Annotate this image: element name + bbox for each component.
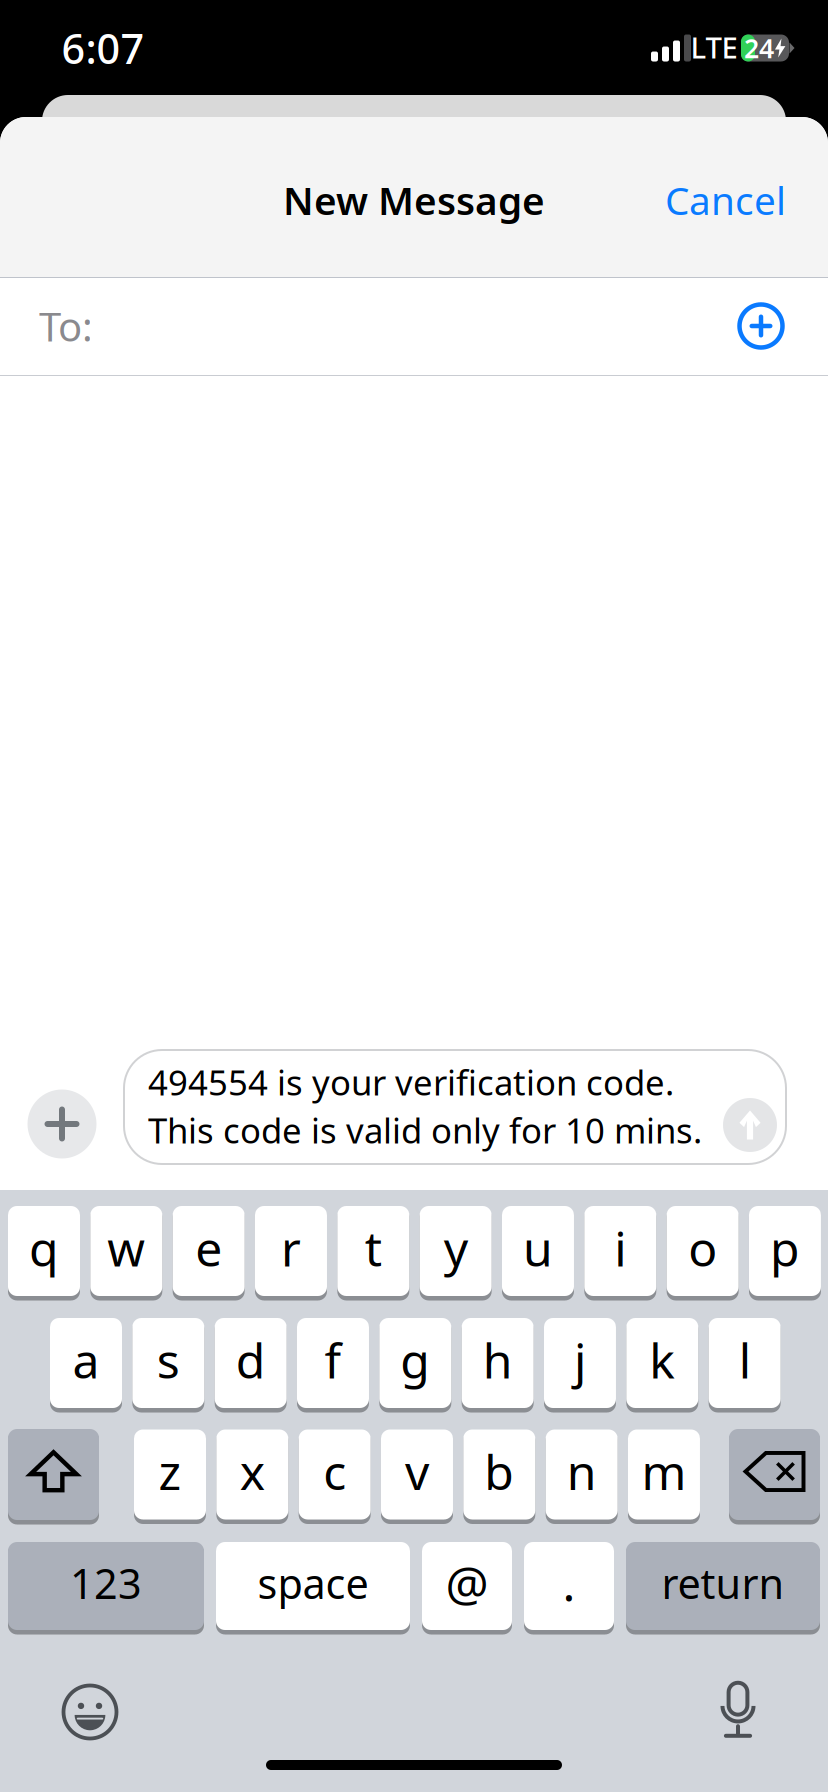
staticText: 6:07 — [61, 21, 144, 75]
button[interactable]: h — [462, 1318, 534, 1411]
button[interactable]: Delete — [729, 1429, 820, 1523]
staticText: j — [574, 1328, 586, 1392]
button[interactable]: Add contact — [724, 289, 798, 363]
staticText: w — [107, 1216, 145, 1280]
staticText: 24 — [744, 30, 774, 66]
button[interactable]: x — [216, 1429, 288, 1522]
staticText: space — [257, 1556, 368, 1610]
button[interactable]: w — [90, 1206, 162, 1299]
button[interactable]: b — [463, 1429, 535, 1522]
button[interactable]: z — [134, 1429, 206, 1522]
staticText: i — [614, 1216, 626, 1280]
button[interactable]: @ — [422, 1542, 512, 1633]
staticText: u — [523, 1216, 553, 1280]
button[interactable]: e — [173, 1206, 245, 1299]
staticText: l — [739, 1328, 751, 1392]
staticText: b — [484, 1440, 514, 1503]
button[interactable]: q — [8, 1206, 80, 1299]
staticText: a — [72, 1328, 99, 1392]
staticText: return — [661, 1556, 784, 1610]
staticText: 494554 is your verification code. — [148, 1059, 674, 1105]
button[interactable]: g — [379, 1318, 451, 1411]
staticText: To: — [39, 299, 93, 352]
button[interactable]: n — [546, 1429, 618, 1522]
staticText: n — [567, 1440, 597, 1503]
staticText: s — [157, 1328, 180, 1392]
button[interactable]: i — [584, 1206, 656, 1299]
staticText: 123 — [70, 1556, 142, 1610]
button[interactable]: u — [502, 1206, 574, 1299]
staticText: x — [240, 1440, 265, 1503]
button[interactable]: a — [50, 1318, 122, 1411]
button[interactable]: p — [749, 1206, 821, 1299]
staticText: h — [483, 1328, 513, 1392]
staticText: y — [444, 1216, 468, 1280]
button[interactable]: Add attachment — [21, 1083, 103, 1165]
staticText: g — [400, 1328, 430, 1392]
button[interactable]: s — [132, 1318, 204, 1411]
staticText: z — [158, 1440, 181, 1503]
button[interactable]: c — [299, 1429, 371, 1522]
staticText: LTE — [690, 27, 737, 66]
button[interactable]: . — [524, 1542, 614, 1633]
button[interactable]: y — [420, 1206, 492, 1299]
staticText: q — [29, 1216, 59, 1280]
button[interactable]: l — [709, 1318, 781, 1411]
staticText: e — [195, 1216, 222, 1280]
staticText: r — [281, 1216, 301, 1280]
staticText: New Message — [283, 174, 545, 226]
staticText: c — [323, 1440, 346, 1503]
button[interactable]: t — [337, 1206, 409, 1299]
staticText: @ — [445, 1551, 488, 1615]
button[interactable]: space — [216, 1542, 410, 1633]
staticText: f — [324, 1328, 341, 1392]
button[interactable]: Dictation — [694, 1666, 782, 1754]
staticText: m — [641, 1440, 686, 1503]
staticText: d — [236, 1328, 266, 1392]
staticText: . — [562, 1551, 575, 1615]
staticText: t — [365, 1216, 382, 1280]
staticText: p — [770, 1216, 800, 1280]
button[interactable]: f — [297, 1318, 369, 1411]
button[interactable]: o — [667, 1206, 739, 1299]
button[interactable]: Shift — [8, 1429, 99, 1523]
staticText: Cancel — [665, 174, 786, 226]
button[interactable]: return — [626, 1542, 820, 1633]
button[interactable]: d — [215, 1318, 287, 1411]
button[interactable]: Send — [720, 1095, 780, 1155]
button[interactable]: v — [381, 1429, 453, 1522]
button[interactable]: k — [626, 1318, 698, 1411]
button[interactable]: Emoji — [46, 1668, 134, 1756]
button[interactable]: r — [255, 1206, 327, 1299]
staticText: o — [688, 1216, 717, 1280]
button[interactable]: j — [544, 1318, 616, 1411]
button[interactable]: Cancel — [586, 154, 786, 246]
button[interactable]: 123 — [8, 1542, 204, 1633]
staticText: k — [649, 1328, 675, 1392]
staticText: This code is valid only for 10 mins. — [148, 1107, 702, 1153]
button[interactable]: m — [628, 1429, 700, 1522]
staticText: v — [405, 1440, 429, 1503]
